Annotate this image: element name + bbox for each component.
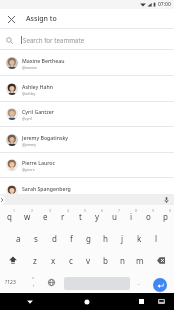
staticText: @ashley (22, 91, 36, 96)
button[interactable]: a (9, 227, 27, 249)
button[interactable]: Pierre Lauroc (0, 152, 174, 178)
button[interactable]: t (72, 205, 89, 227)
staticText: Ashley Hahn (22, 83, 53, 90)
button[interactable]: Home (78, 293, 96, 310)
staticText: Sarah Spangenberg (22, 185, 71, 192)
button[interactable]: More suggestions (0, 195, 5, 205)
button[interactable]: u (106, 205, 123, 227)
staticText: n (120, 255, 125, 266)
staticText: 5 (84, 208, 87, 213)
staticText: 9 (152, 208, 155, 213)
button[interactable]: z (26, 249, 44, 271)
button[interactable]: b (97, 249, 114, 271)
staticText: Cyril Gantzer (22, 108, 55, 115)
button[interactable]: e (36, 205, 54, 227)
button[interactable]: ?123 (0, 271, 21, 293)
button[interactable]: Maxine Bertheau (0, 50, 174, 76)
button[interactable]: s (27, 227, 45, 249)
staticText: c (69, 255, 73, 266)
staticText: l (155, 233, 158, 244)
button[interactable]: Close (0, 9, 22, 29)
button[interactable]: Recents (132, 293, 150, 310)
button[interactable]: r (54, 205, 72, 227)
staticText: g (86, 233, 91, 244)
staticText: d (52, 233, 57, 244)
staticText: 0 (169, 208, 172, 213)
staticText: . (138, 279, 140, 287)
button[interactable]: k (131, 227, 148, 249)
staticText: k (137, 233, 142, 244)
staticText: @sarah (22, 193, 34, 198)
button[interactable]: p (157, 205, 174, 227)
button[interactable]: Cyril Gantzer (0, 101, 174, 127)
button[interactable]: Voice input (161, 195, 171, 205)
button[interactable]: g (80, 227, 97, 249)
button[interactable]: l (148, 227, 165, 249)
staticText: q (7, 211, 12, 222)
button[interactable]: Backspace (148, 249, 174, 271)
button[interactable]: Jeremy Bogatinsky (0, 127, 174, 153)
staticText: a (16, 233, 21, 244)
staticText: t (79, 211, 82, 222)
staticText: z (33, 255, 37, 266)
button[interactable]: f (63, 227, 80, 249)
staticText: 7 (118, 208, 121, 213)
button[interactable]: o (140, 205, 157, 227)
staticText: Search for teammate (23, 36, 85, 44)
staticText: m (136, 255, 144, 266)
staticText: Maxine Bertheau (22, 57, 65, 64)
staticText: 07:00 (158, 1, 171, 8)
staticText: e (43, 211, 48, 222)
button[interactable]: Change language (44, 271, 58, 293)
staticText: 2 (31, 208, 34, 213)
staticText: 6 (101, 208, 104, 213)
staticText: Jeremy Bogatinsky (22, 134, 69, 141)
button[interactable]: d (45, 227, 63, 249)
staticText: p (163, 211, 168, 222)
staticText: Assign to (26, 14, 57, 24)
staticText: 4 (67, 208, 70, 213)
button[interactable]: q (0, 205, 18, 227)
staticText: Pierre Lauroc (22, 159, 55, 166)
button[interactable]: Shift (0, 249, 26, 271)
staticText: h (103, 233, 108, 244)
staticText: i (130, 211, 133, 222)
staticText: y (95, 211, 100, 222)
button[interactable]: i (123, 205, 140, 227)
button[interactable]: j (114, 227, 131, 249)
button[interactable]: Enter (153, 278, 167, 292)
staticText: @jeremy (22, 142, 36, 147)
staticText: r (61, 211, 65, 222)
staticText: , (33, 280, 35, 288)
staticText: o (146, 211, 151, 222)
button[interactable]: Search for teammate (0, 29, 174, 50)
staticText: j (121, 233, 124, 244)
button[interactable]: h (97, 227, 114, 249)
staticText: ° (32, 276, 35, 283)
button[interactable]: m (131, 249, 148, 271)
button[interactable]: ° (26, 271, 41, 293)
button[interactable]: c (62, 249, 80, 271)
staticText: @pierre (22, 167, 35, 172)
staticText: b (103, 255, 108, 266)
button[interactable]: v (80, 249, 97, 271)
button[interactable]: Hide keyboard (153, 293, 169, 310)
staticText: f (70, 233, 73, 244)
staticText: 1 (13, 208, 16, 213)
button[interactable]: n (114, 249, 131, 271)
button[interactable]: w (18, 205, 36, 227)
button[interactable]: Back (21, 293, 39, 310)
staticText: s (34, 233, 38, 244)
staticText: u (112, 211, 117, 222)
staticText: ?123 (5, 279, 16, 286)
button[interactable]: x (44, 249, 62, 271)
staticText: x (51, 255, 56, 266)
button[interactable]: . (132, 271, 146, 293)
staticText: @maxine (22, 65, 37, 70)
staticText: w (24, 211, 31, 222)
button[interactable]: Ashley Hahn (0, 76, 174, 102)
button[interactable]: Sarah Spangenberg (0, 178, 174, 204)
button[interactable]: y (89, 205, 106, 227)
staticText: @cyril (22, 116, 32, 121)
